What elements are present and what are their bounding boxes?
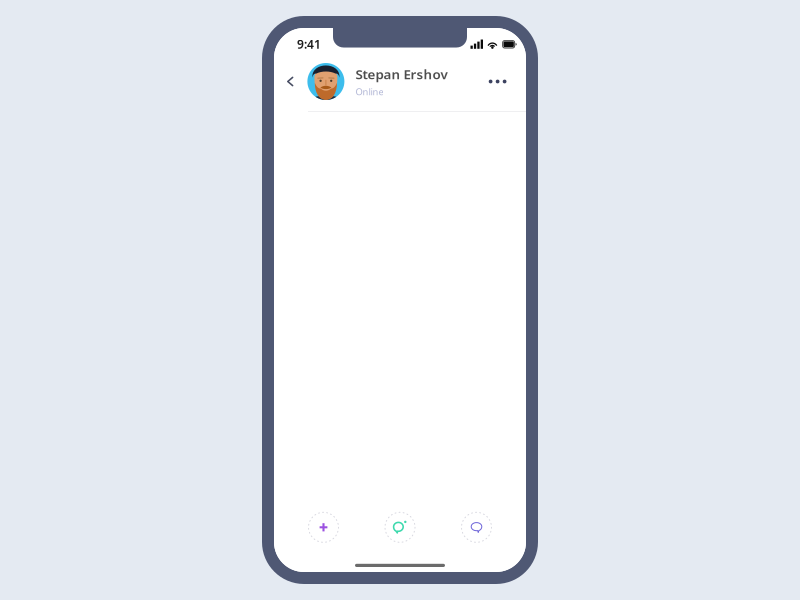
button[interactable]: Message bbox=[461, 512, 492, 543]
staticText: Online bbox=[355, 85, 383, 98]
button[interactable]: More options bbox=[473, 57, 526, 106]
staticText: Stepan Ershov bbox=[355, 65, 447, 83]
button[interactable]: Camera bbox=[384, 512, 415, 543]
staticText: 9:41 bbox=[297, 36, 321, 52]
button[interactable]: Add attachment bbox=[308, 512, 339, 543]
button[interactable]: Back bbox=[274, 58, 307, 105]
button[interactable]: Stepan Ershov bbox=[307, 52, 473, 111]
